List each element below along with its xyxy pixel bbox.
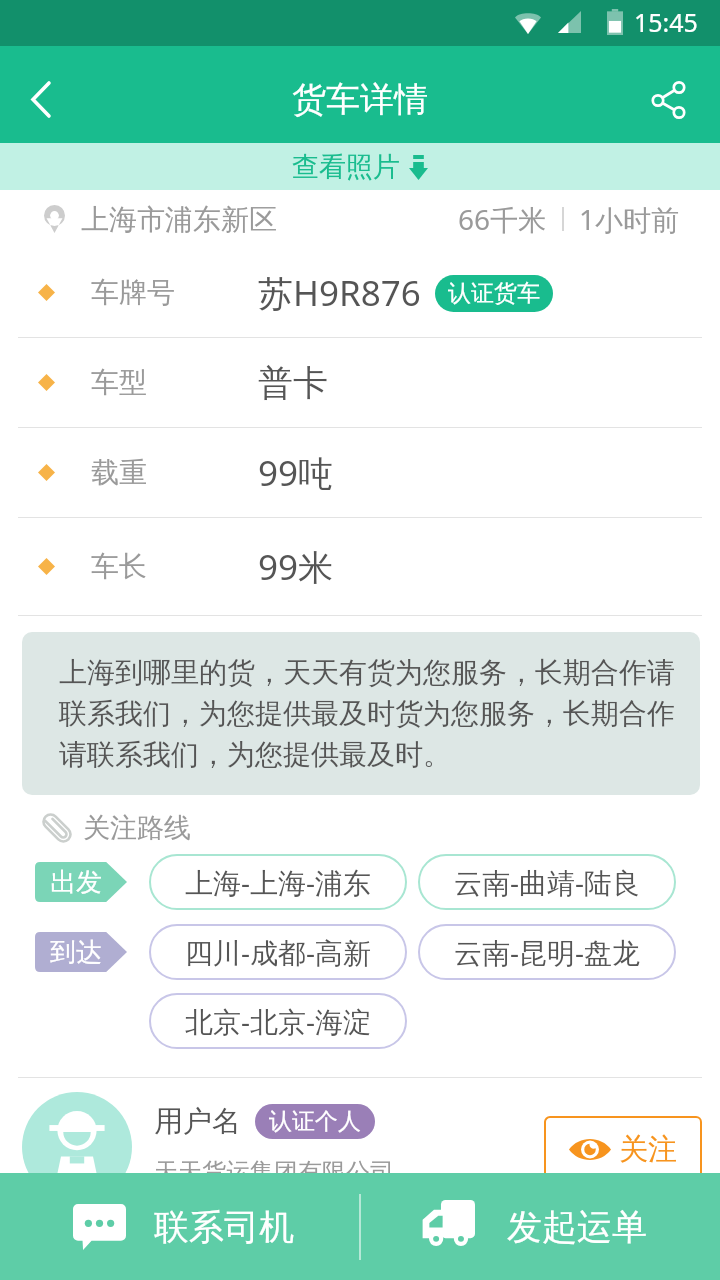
button[interactable]: 查看照片 [0,143,720,190]
button[interactable]: 车型 [0,338,720,427]
staticText: 普卡 [258,361,328,405]
staticText: 货车详情 [292,78,428,121]
staticText: 认证个人 [269,1107,361,1136]
staticText: 云南-曲靖-陆良 [454,863,641,901]
staticText: 到达 [50,936,102,969]
button[interactable]: Back [0,46,84,143]
staticText: 认证货车 [448,279,540,308]
button[interactable]: 联系司机 [0,1173,359,1280]
staticText: 四川-成都-高新 [185,933,372,971]
staticText: 载重 [91,455,147,490]
button[interactable]: 车长 [0,518,720,615]
staticText: 99米 [258,543,334,591]
staticText: 上海-上海-浦东 [185,863,372,901]
button[interactable]: 载重 [0,428,720,517]
staticText: 查看照片 [292,150,400,184]
staticText: 车牌号 [91,275,175,310]
button[interactable]: Share [632,46,720,143]
staticText: 99吨 [258,449,334,497]
staticText: 云南-昆明-盘龙 [454,933,641,971]
staticText: 天天货运集团有限公司 [154,1157,394,1187]
staticText: 车型 [91,365,147,400]
staticText: 上海市浦东新区 [81,202,277,237]
staticText: 15:45 [634,5,698,39]
button[interactable]: 发起运单 [361,1173,720,1280]
button[interactable]: 云南-昆明-盘龙 [418,924,676,980]
staticText: 66千米 [458,200,547,238]
staticText: 联系司机 [154,1205,294,1249]
button[interactable]: 车牌号 [0,248,720,337]
button[interactable]: 云南-曲靖-陆良 [418,854,676,910]
staticText: 发起运单 [507,1205,647,1249]
staticText: 北京-北京-海淀 [185,1002,372,1040]
staticText: 1小时前 [579,200,680,238]
button[interactable]: 关注 [544,1116,702,1183]
staticText: 车长 [91,549,147,584]
staticText: 出发 [50,866,102,899]
button[interactable]: 四川-成都-高新 [149,924,407,980]
button[interactable]: 北京-北京-海淀 [149,993,407,1049]
staticText: 关注 [619,1131,677,1168]
staticText: 苏H9R876 [258,269,421,317]
staticText: 用户名 [154,1103,241,1140]
button[interactable]: 上海-上海-浦东 [149,854,407,910]
staticText: 关注路线 [83,811,191,845]
staticText: 上海到哪里的货，天天有货为您服务，长期合作请联系我们，为您提供最及时货为您服务，… [59,655,678,772]
